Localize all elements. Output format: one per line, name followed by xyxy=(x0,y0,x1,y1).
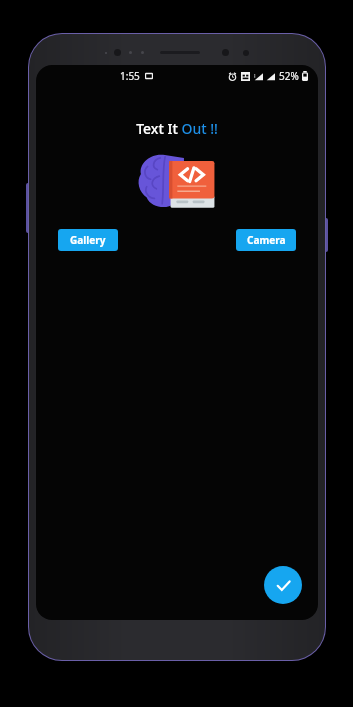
staticText: 52% xyxy=(279,69,299,83)
staticText: Text It Out !! xyxy=(136,119,218,138)
staticText: 1:55 xyxy=(120,69,140,83)
staticText: Camera xyxy=(247,233,286,247)
button[interactable]: Camera xyxy=(236,229,296,251)
button[interactable]: Gallery xyxy=(58,229,118,251)
button[interactable]: Confirm xyxy=(264,566,302,604)
staticText: Gallery xyxy=(70,233,106,247)
